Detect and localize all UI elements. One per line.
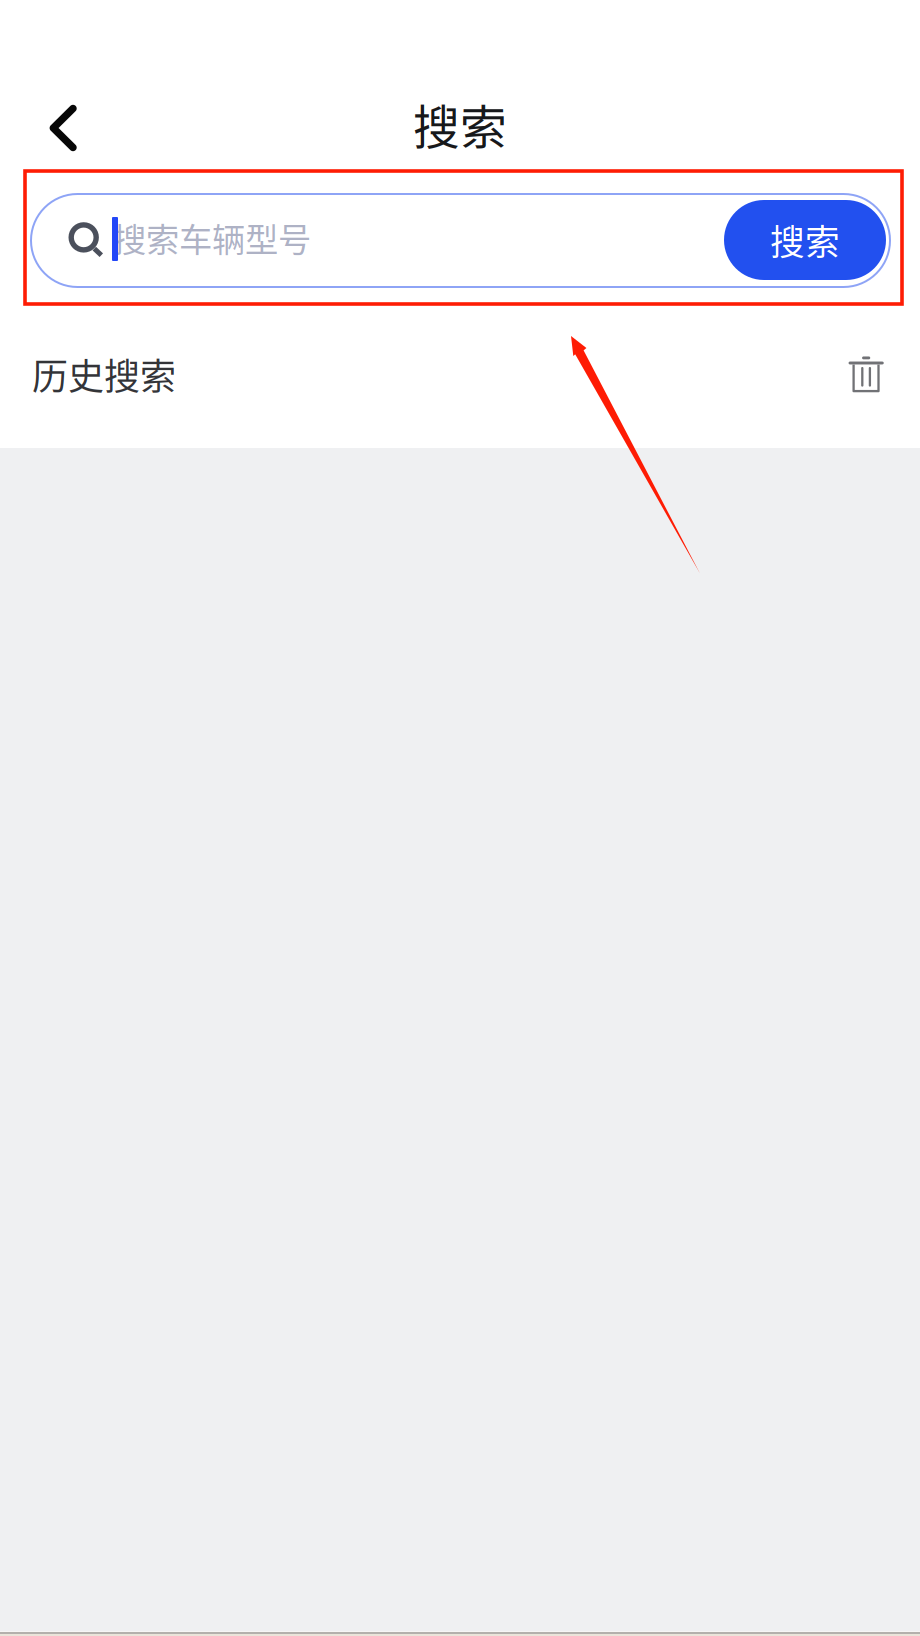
staticText: 搜索: [413, 90, 507, 158]
button[interactable]: 清空历史搜索: [835, 343, 897, 405]
staticText: 搜索车辆型号: [113, 213, 311, 262]
staticText: 历史搜索: [32, 348, 176, 400]
button[interactable]: 搜索车辆型号: [31, 194, 890, 287]
staticText: 搜索: [770, 215, 840, 265]
button[interactable]: 返回: [16, 82, 110, 174]
button[interactable]: 搜索: [724, 200, 886, 280]
